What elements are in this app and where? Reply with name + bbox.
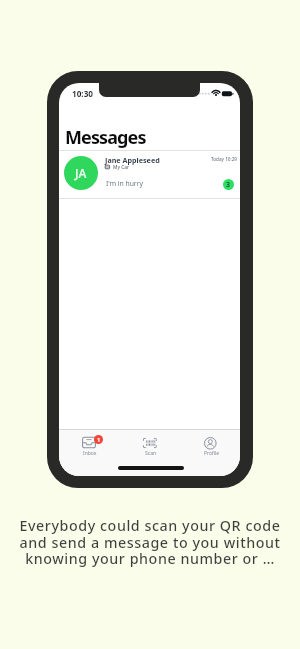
- staticText: Everybody could scan your QR code and se…: [0, 516, 300, 568]
- staticText: 10:30: [72, 88, 94, 99]
- staticText: Messages: [65, 125, 146, 150]
- staticText: Jane Appleseed: [105, 155, 160, 165]
- staticText: 1: [97, 436, 101, 444]
- staticText: JA: [75, 165, 87, 181]
- staticText: Today 10:29: [211, 156, 237, 162]
- staticText: 3: [226, 180, 231, 190]
- staticText: I'm in hurry: [106, 179, 143, 188]
- staticText: Scan: [145, 450, 157, 457]
- staticText: Profile: [204, 450, 220, 457]
- staticText: Inbox: [83, 450, 97, 457]
- staticText: My Car: [113, 164, 130, 171]
